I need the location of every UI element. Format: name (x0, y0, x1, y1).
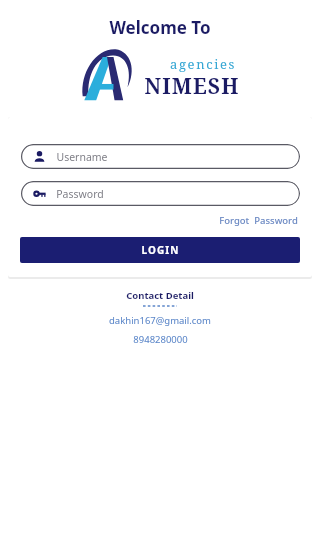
staticText: 8948280000 (133, 333, 188, 346)
staticText: LOGIN (141, 243, 180, 257)
button[interactable]: Username (20, 144, 300, 169)
button[interactable]: Password (20, 181, 300, 206)
staticText: Forgot Password (219, 214, 298, 227)
button[interactable]: 8948280000 (130, 332, 191, 347)
staticText: Username (56, 150, 108, 164)
staticText: Password (56, 187, 104, 201)
button[interactable]: Forgot Password (217, 213, 300, 228)
button[interactable]: dakhin167@gmail.com (106, 313, 214, 328)
button[interactable]: LOGIN (20, 237, 300, 263)
staticText: Contact Detail (126, 289, 194, 302)
staticText: agencies (170, 55, 236, 73)
staticText: Welcome To (109, 16, 211, 39)
staticText: dakhin167@gmail.com (109, 314, 211, 327)
staticText: NIMESH (144, 72, 240, 101)
